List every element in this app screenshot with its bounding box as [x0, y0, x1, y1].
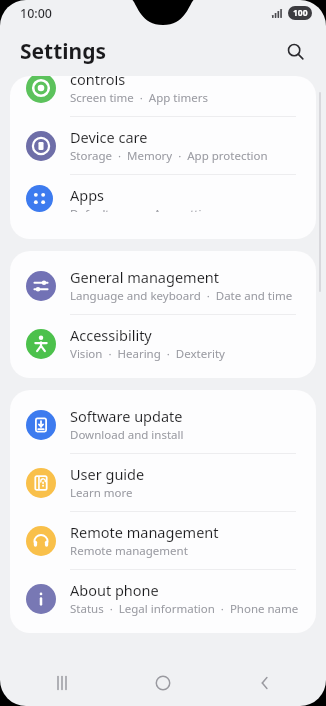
button[interactable]: Home [123, 660, 203, 706]
staticText: General management [70, 267, 220, 287]
button[interactable]: controls [10, 76, 316, 116]
staticText: controls [70, 76, 126, 89]
staticText: Language and keyboard · Date and time [70, 288, 293, 304]
staticText: Settings [20, 37, 107, 66]
staticText: Device care [70, 127, 148, 147]
staticText: Accessibility [70, 325, 152, 345]
button[interactable]: Device care [10, 117, 316, 174]
button[interactable]: Accessibility [10, 315, 316, 372]
button[interactable]: Remote management [10, 512, 316, 569]
staticText: Software update [70, 406, 183, 426]
button[interactable]: About phone [10, 570, 316, 627]
staticText: Remote management [70, 543, 188, 559]
staticText: Learn more [70, 485, 133, 501]
button[interactable]: Apps [10, 175, 316, 222]
staticText: Vision · Hearing · Dexterity [70, 346, 225, 362]
button[interactable]: Recents [22, 660, 102, 706]
button[interactable]: Search [278, 34, 312, 68]
staticText: Default apps · App settings [70, 206, 222, 212]
button[interactable]: Back [225, 660, 305, 706]
button[interactable]: Software update [10, 396, 316, 453]
staticText: 100 [293, 7, 308, 19]
staticText: Status · Legal information · Phone name [70, 601, 299, 617]
staticText: Screen time · App timers [70, 90, 208, 106]
staticText: Apps [70, 185, 105, 205]
button[interactable]: User guide [10, 454, 316, 511]
staticText: 10:00 [20, 5, 53, 22]
staticText: User guide [70, 464, 145, 484]
button[interactable]: General management [10, 257, 316, 314]
staticText: Storage · Memory · App protection [70, 148, 268, 164]
staticText: Remote management [70, 522, 219, 542]
staticText: About phone [70, 580, 159, 600]
staticText: Download and install [70, 427, 184, 443]
